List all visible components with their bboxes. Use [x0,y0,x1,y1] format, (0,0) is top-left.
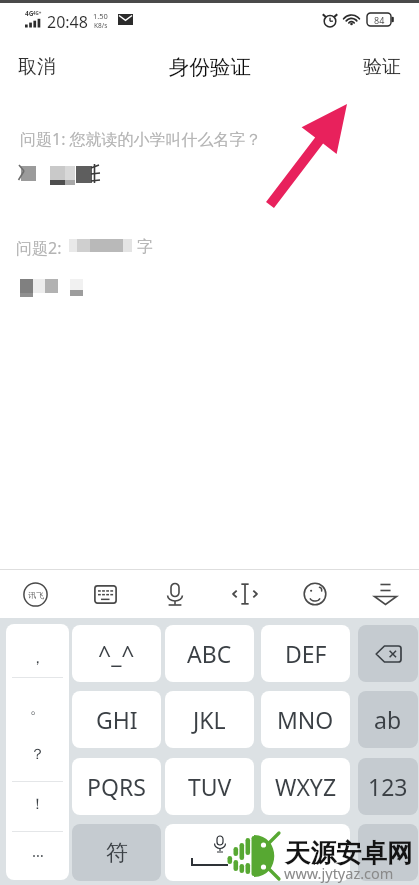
staticText: GHI [96,704,138,735]
button[interactable]: WXYZ [261,758,350,815]
staticText: 4G+ [33,10,42,16]
button[interactable]: GHI [72,691,161,748]
button[interactable]: ab [358,691,418,748]
staticText: ？ [30,745,45,764]
button[interactable]: TUV [165,758,254,815]
button[interactable]: JKL [165,691,254,748]
button[interactable]: 取消 [0,38,74,95]
staticText: DEF [285,638,327,669]
button[interactable]: ^_^ [72,625,161,682]
staticText: 84 [374,14,385,26]
button[interactable]: DEF [261,625,350,682]
button[interactable]: ， [6,624,69,880]
staticText: 符 [106,839,128,867]
staticText: 天源安卓网 [285,837,413,869]
button[interactable]: 符 [72,824,161,881]
staticText: www.jytyaz.com [284,863,394,883]
button[interactable]: Delete [358,625,418,682]
staticText: 123 [368,771,408,802]
staticText: 20:48 [47,11,88,33]
staticText: K8/s [94,21,108,30]
staticText: 验证 [363,55,401,79]
button[interactable]: Hide keyboard [357,570,413,618]
button[interactable]: MNO [261,691,350,748]
staticText: 身份验证 [169,54,251,80]
staticText: MNO [277,704,334,735]
button[interactable]: Space [165,824,350,881]
staticText: 4G [25,9,34,18]
button[interactable]: Input method [7,570,63,618]
button[interactable]: 123 [358,758,418,815]
staticText: ！ [30,795,45,814]
staticText: 问题1: 您就读的小学叫什么名字？ [20,128,262,150]
staticText: JKL [193,704,226,735]
button[interactable]: Voice input [147,570,203,618]
button[interactable]: Keyboard layout [77,570,133,618]
staticText: ABC [187,638,232,669]
staticText: ab [374,704,402,735]
button[interactable]: Move cursor [217,570,273,618]
staticText: TUV [188,771,232,802]
staticText: 1.50 [93,11,108,21]
staticText: 。 [30,699,45,718]
button[interactable]: 验证 [345,38,419,95]
staticText: 字 [137,237,153,257]
staticText: 取消 [18,55,56,79]
staticText: 讯飞 [28,590,44,600]
staticText: … [32,841,44,861]
staticText: PQRS [87,771,146,802]
staticText: 问题2: [16,237,62,259]
button[interactable] [358,824,418,881]
staticText: ^_^ [98,638,135,669]
button[interactable]: Emoji [287,570,343,618]
staticText: ， [30,649,45,668]
button[interactable]: PQRS [72,758,161,815]
staticText: WXYZ [275,771,337,802]
button[interactable]: ABC [165,625,254,682]
